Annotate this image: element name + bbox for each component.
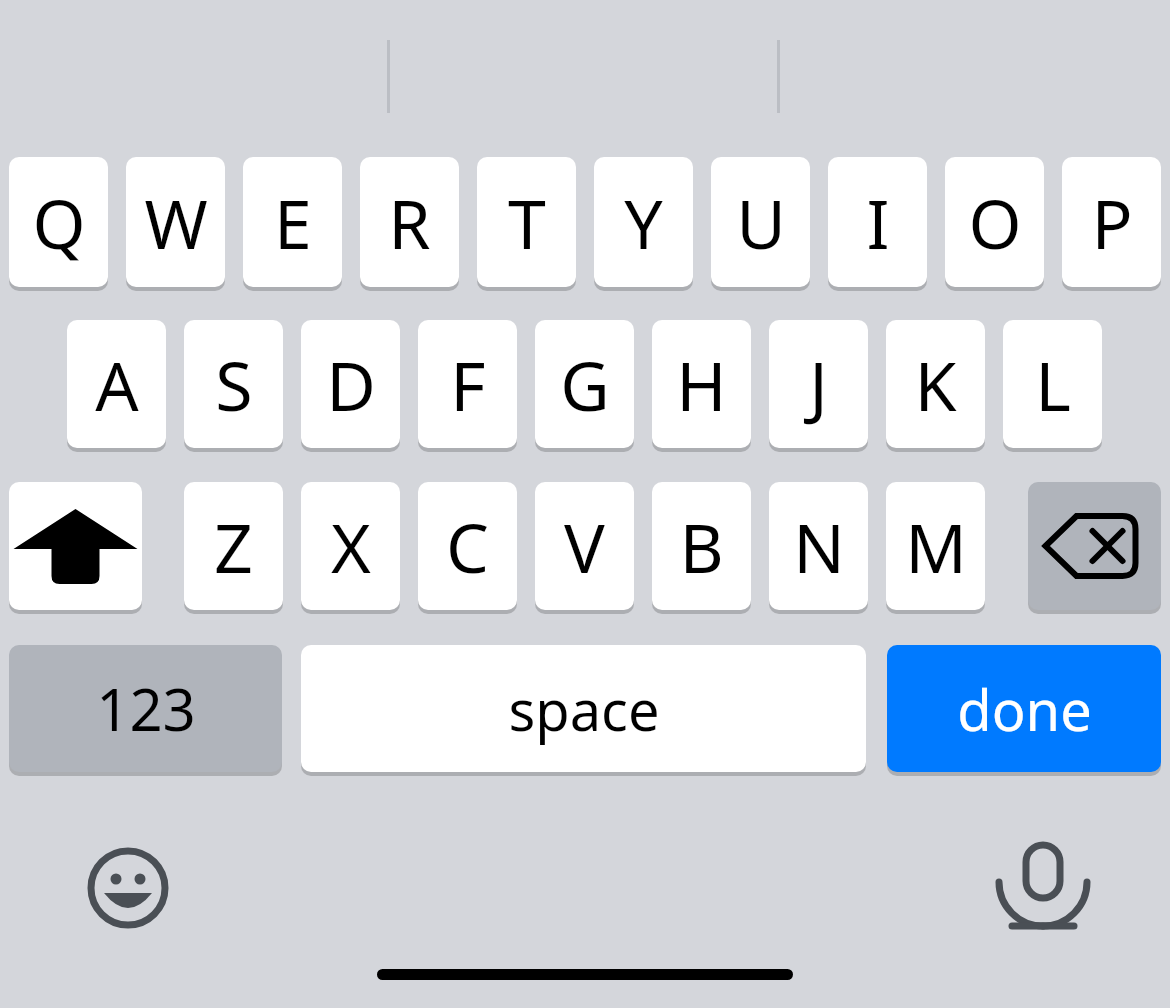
staticText: A (95, 338, 139, 431)
staticText: R (388, 176, 431, 269)
staticText: done (957, 671, 1092, 747)
button[interactable]: W (126, 157, 225, 287)
button[interactable]: D (301, 320, 400, 448)
button[interactable]: N (769, 482, 868, 610)
button[interactable]: Dictation (997, 838, 1089, 938)
button[interactable]: Emoji keyboard (82, 842, 174, 934)
button[interactable]: U (711, 157, 810, 287)
button[interactable]: E (243, 157, 342, 287)
staticText: D (326, 338, 376, 431)
button[interactable]: Delete (1028, 482, 1161, 610)
button[interactable]: Y (594, 157, 693, 287)
staticText: I (866, 176, 890, 269)
staticText: Q (32, 176, 86, 269)
staticText: H (676, 338, 727, 431)
staticText: X (331, 500, 371, 593)
staticText: Y (624, 176, 663, 269)
staticText: M (905, 500, 967, 593)
staticText: N (793, 500, 845, 593)
button[interactable]: Q (9, 157, 108, 287)
staticText: K (914, 338, 957, 431)
staticText: L (1035, 338, 1071, 431)
button[interactable]: 123 (9, 645, 282, 772)
button[interactable]: H (652, 320, 751, 448)
button[interactable]: K (886, 320, 985, 448)
button[interactable]: B (652, 482, 751, 610)
staticText: G (560, 338, 610, 431)
staticText: V (564, 500, 605, 593)
button[interactable]: I (828, 157, 927, 287)
button[interactable]: R (360, 157, 459, 287)
button[interactable]: Z (184, 482, 283, 610)
staticText: Z (214, 500, 253, 593)
staticText: U (736, 176, 786, 269)
staticText: T (508, 176, 546, 269)
button[interactable]: F (418, 320, 517, 448)
button[interactable]: Shift (9, 482, 142, 610)
staticText: W (144, 176, 208, 269)
button[interactable]: T (477, 157, 576, 287)
staticText: F (450, 338, 486, 431)
button[interactable]: G (535, 320, 634, 448)
staticText: B (679, 500, 724, 593)
button[interactable]: A (67, 320, 166, 448)
button[interactable]: L (1003, 320, 1102, 448)
staticText: J (809, 338, 828, 431)
staticText: P (1091, 176, 1133, 269)
button[interactable]: space (301, 645, 866, 772)
button[interactable]: S (184, 320, 283, 448)
button[interactable]: done (887, 645, 1161, 772)
staticText: C (446, 500, 489, 593)
staticText: space (508, 671, 660, 747)
button[interactable]: P (1062, 157, 1161, 287)
staticText: 123 (96, 669, 196, 748)
button[interactable]: V (535, 482, 634, 610)
staticText: O (968, 176, 1022, 269)
staticText: S (215, 338, 253, 431)
button[interactable]: C (418, 482, 517, 610)
button[interactable]: X (301, 482, 400, 610)
button[interactable]: J (769, 320, 868, 448)
button[interactable]: M (886, 482, 985, 610)
button[interactable]: O (945, 157, 1044, 287)
staticText: E (274, 176, 312, 269)
